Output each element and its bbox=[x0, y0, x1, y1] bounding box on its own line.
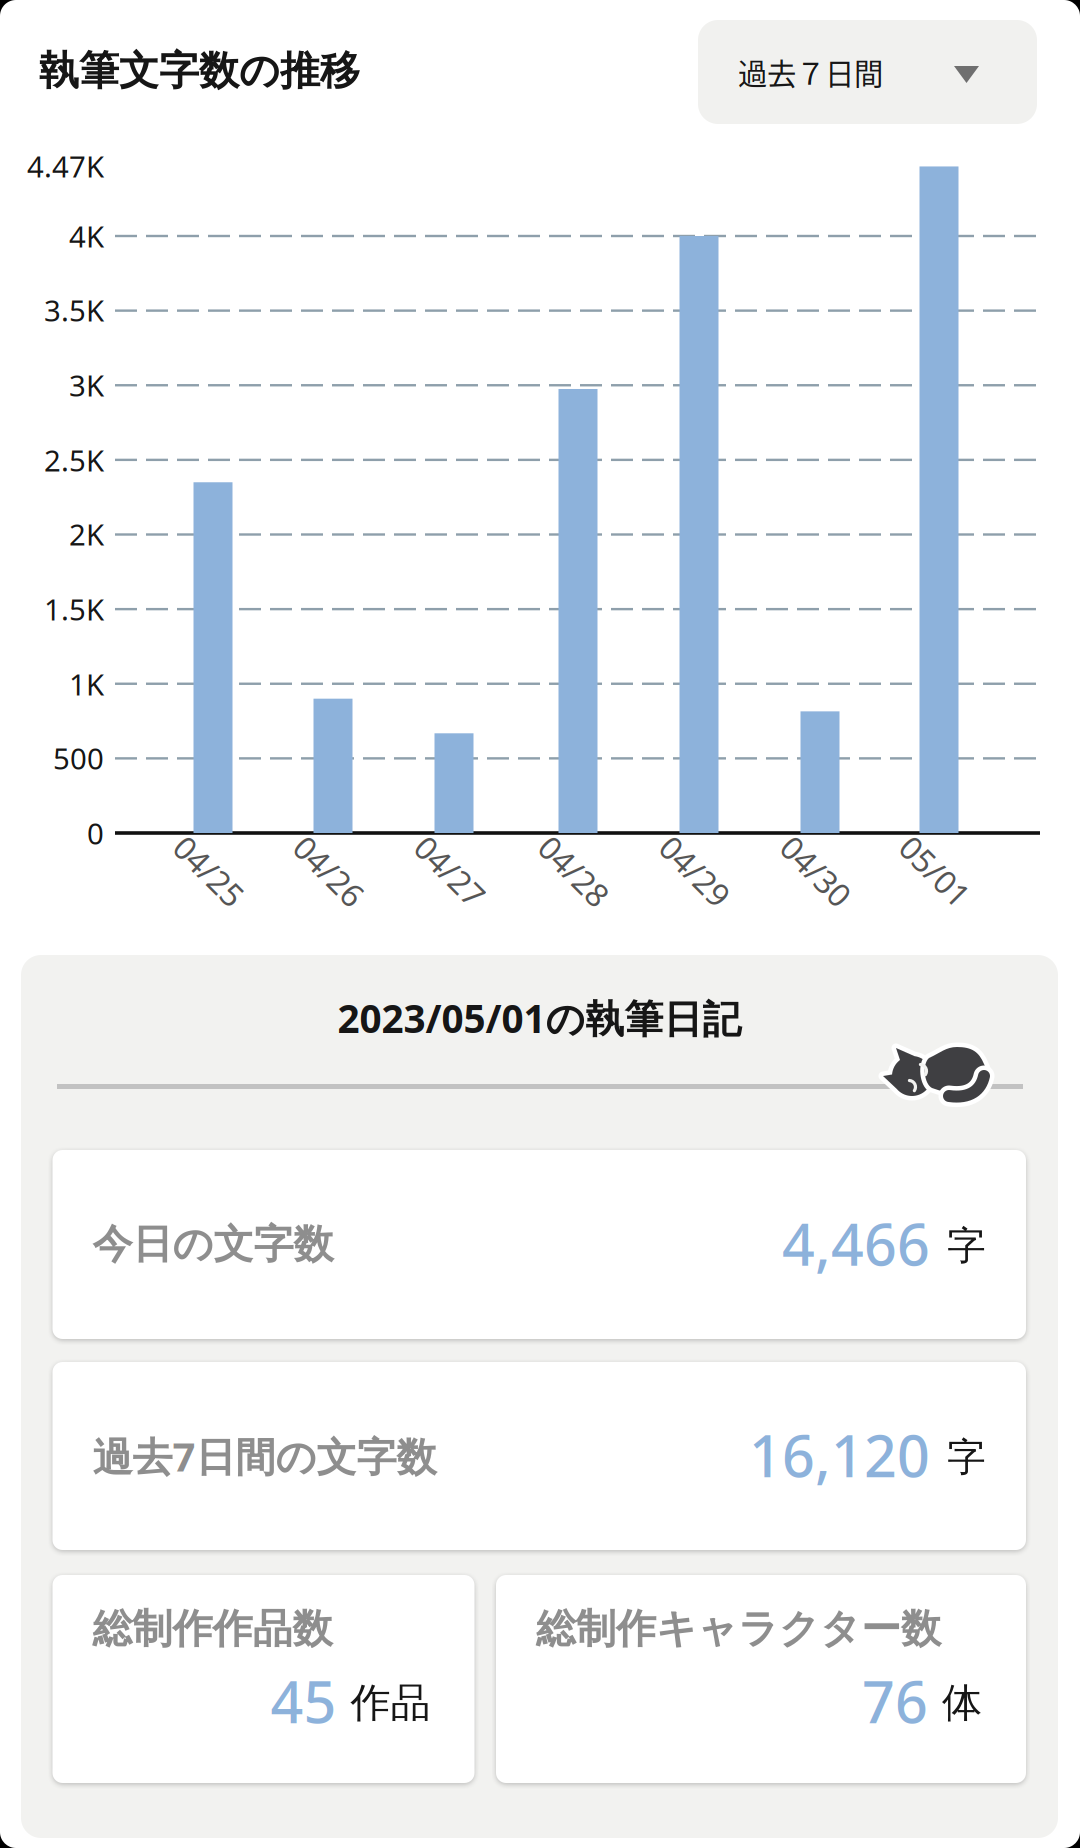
staticText: 45 bbox=[270, 1662, 336, 1740]
staticText: 04/25 bbox=[167, 850, 251, 892]
staticText: 4,466 bbox=[782, 1204, 930, 1283]
button[interactable]: 今日の文字数 bbox=[52, 1150, 1026, 1339]
staticText: 2023/05/01の執筆日記 bbox=[337, 992, 741, 1044]
staticText: 0 bbox=[87, 813, 104, 852]
button[interactable]: 総制作キャラクター数 bbox=[496, 1575, 1026, 1783]
staticText: 04/28 bbox=[532, 850, 616, 892]
staticText: 過去7日間の文字数 bbox=[92, 1429, 436, 1483]
button[interactable]: 過去7日間の文字数 bbox=[52, 1362, 1026, 1550]
staticText: 1K bbox=[69, 664, 104, 703]
staticText: 05/01 bbox=[893, 850, 977, 892]
staticText: 体 bbox=[942, 1678, 982, 1728]
staticText: 今日の文字数 bbox=[92, 1219, 333, 1270]
staticText: 3K bbox=[69, 365, 104, 404]
staticText: 4K bbox=[69, 216, 104, 255]
staticText: 4.47K bbox=[27, 146, 104, 185]
button[interactable]: 総制作作品数 bbox=[52, 1575, 474, 1783]
staticText: 04/26 bbox=[287, 850, 371, 892]
button[interactable]: 期間を選択: 過去7日間 bbox=[698, 20, 1037, 124]
staticText: 1.5K bbox=[44, 589, 104, 628]
staticText: 字 bbox=[947, 1433, 986, 1482]
staticText: 2.5K bbox=[44, 440, 104, 479]
staticText: 総制作作品数 bbox=[92, 1604, 332, 1654]
staticText: 04/29 bbox=[653, 850, 737, 892]
staticText: 作品 bbox=[350, 1678, 430, 1728]
staticText: 総制作キャラクター数 bbox=[536, 1604, 941, 1654]
staticText: 字 bbox=[947, 1221, 986, 1270]
staticText: 04/27 bbox=[408, 850, 492, 892]
staticText: 76 bbox=[862, 1662, 928, 1740]
staticText: 2K bbox=[69, 514, 104, 553]
staticText: 執筆文字数の推移 bbox=[39, 46, 360, 96]
staticText: 16,120 bbox=[749, 1416, 930, 1494]
staticText: 過去７日間 bbox=[738, 51, 883, 93]
staticText: 04/30 bbox=[774, 850, 858, 892]
staticText: 500 bbox=[53, 738, 104, 777]
staticText: 3.5K bbox=[44, 290, 104, 329]
